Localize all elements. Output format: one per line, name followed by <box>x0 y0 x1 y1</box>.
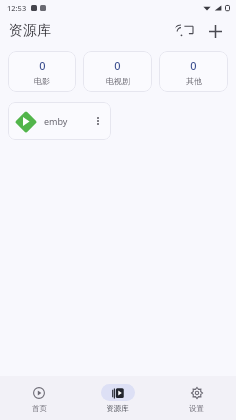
staticText: 电视剧 <box>106 76 130 86</box>
staticText: 0 <box>39 58 46 73</box>
button[interactable]: Add <box>203 19 227 43</box>
staticText: 12:53 <box>7 3 27 13</box>
button[interactable]: Cast to device <box>175 19 199 43</box>
staticText: 资源库 <box>106 404 129 413</box>
button[interactable]: 首页 <box>0 380 78 417</box>
staticText: 0 <box>190 58 197 73</box>
staticText: 电影 <box>34 76 50 86</box>
button[interactable]: 0 <box>8 51 76 92</box>
staticText: 0 <box>114 58 121 73</box>
staticText: 首页 <box>32 404 47 413</box>
button[interactable]: 0 <box>83 51 152 92</box>
button[interactable]: 资源库 <box>78 380 157 417</box>
staticText: 其他 <box>186 76 202 86</box>
staticText: 资源库 <box>9 22 51 40</box>
staticText: emby <box>44 115 68 127</box>
button[interactable]: More options <box>91 114 105 128</box>
button[interactable]: 0 <box>159 51 228 92</box>
button[interactable]: 设置 <box>157 380 236 417</box>
button[interactable]: emby <box>8 102 111 140</box>
staticText: 设置 <box>189 404 204 413</box>
